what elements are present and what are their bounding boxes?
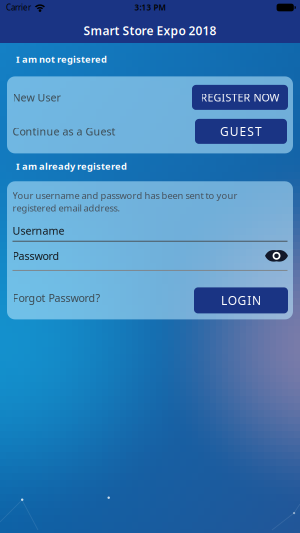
button[interactable]: Forgot Password? bbox=[12, 293, 100, 307]
staticText: Smart Store Expo 2018 bbox=[83, 22, 216, 38]
staticText: I am already registered bbox=[16, 160, 127, 172]
staticText: Continue as a Guest bbox=[12, 124, 115, 138]
staticText: Carrier bbox=[6, 2, 31, 13]
button[interactable]: REGISTER NOW bbox=[192, 85, 288, 110]
button[interactable]: LOGIN bbox=[194, 287, 288, 313]
staticText: I am not registered bbox=[16, 53, 107, 65]
button[interactable]: GUEST bbox=[195, 119, 287, 144]
staticText: Your username and password has been sent… bbox=[12, 189, 237, 214]
staticText: Password bbox=[12, 249, 59, 263]
staticText: LOGIN bbox=[221, 292, 261, 308]
staticText: New User bbox=[12, 90, 60, 104]
staticText: 3:13 PM bbox=[134, 2, 165, 13]
button[interactable]: Show password bbox=[265, 250, 288, 261]
staticText: Forgot Password? bbox=[12, 291, 100, 305]
staticText: GUEST bbox=[220, 123, 262, 139]
staticText: REGISTER NOW bbox=[200, 90, 279, 104]
staticText: Username bbox=[12, 224, 64, 238]
